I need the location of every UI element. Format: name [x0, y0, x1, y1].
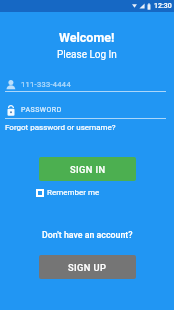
staticText: Please Log In: [57, 49, 117, 61]
staticText: Welcome!: [59, 30, 115, 45]
button[interactable]: Remember me: [36, 188, 100, 197]
staticText: 111-333-4444: [21, 80, 71, 89]
staticText: Remember me: [47, 188, 100, 197]
button[interactable]: SIGN IN: [39, 157, 136, 181]
button[interactable]: Forgot password or username?: [5, 123, 116, 132]
staticText: PASSWORD: [21, 106, 62, 114]
button[interactable]: SIGN UP: [39, 255, 136, 279]
staticText: Don't have an account?: [42, 230, 133, 240]
staticText: SIGN UP: [68, 262, 107, 273]
staticText: SIGN IN: [70, 164, 106, 175]
staticText: 12:30: [154, 2, 172, 10]
